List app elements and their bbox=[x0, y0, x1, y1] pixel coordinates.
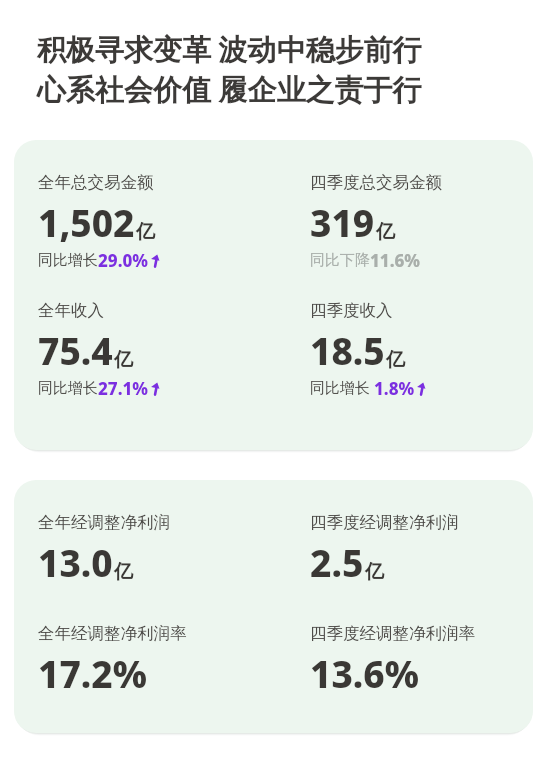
button[interactable]: 四季度经调整净利润 bbox=[310, 512, 521, 587]
button[interactable]: 四季度收入 bbox=[310, 300, 521, 400]
button[interactable]: 全年经调整净利润率 bbox=[38, 623, 278, 698]
staticText: 同比增长 bbox=[38, 251, 98, 270]
button[interactable]: 四季度经调整净利润率 bbox=[310, 623, 521, 698]
staticText: 全年总交易金额 bbox=[38, 172, 154, 193]
staticText: 13.6% bbox=[310, 648, 419, 698]
staticText: 18.5 bbox=[310, 325, 385, 375]
button[interactable]: 全年收入 bbox=[38, 300, 278, 400]
staticText: 319 bbox=[310, 197, 375, 247]
staticText: 27.1% bbox=[98, 377, 149, 400]
staticText: 亿 bbox=[114, 348, 133, 372]
button[interactable]: 全年经调整净利润 bbox=[38, 512, 278, 587]
staticText: 亿 bbox=[376, 220, 395, 244]
staticText: 亿 bbox=[114, 560, 133, 584]
staticText: 29.0% bbox=[98, 249, 149, 272]
staticText: 75.4 bbox=[38, 325, 113, 375]
staticText: 四季度经调整净利润率 bbox=[310, 623, 475, 644]
staticText: 17.2% bbox=[38, 648, 147, 698]
staticText: 四季度收入 bbox=[310, 300, 393, 321]
staticText: 全年经调整净利润 bbox=[38, 512, 170, 533]
staticText: 全年经调整净利润率 bbox=[38, 623, 187, 644]
staticText: 亿 bbox=[365, 560, 384, 584]
staticText: 四季度经调整净利润 bbox=[310, 512, 459, 533]
staticText: 2.5 bbox=[310, 537, 364, 587]
button[interactable]: 四季度总交易金额 bbox=[310, 172, 521, 272]
staticText: 1.8% bbox=[374, 377, 415, 400]
staticText: 心系社会价值 履企业之责于行 bbox=[37, 69, 422, 109]
staticText: 13.0 bbox=[38, 537, 113, 587]
staticText: 同比增长 bbox=[310, 379, 370, 398]
staticText: 同比增长 bbox=[38, 379, 98, 398]
button[interactable]: 全年总交易金额 bbox=[38, 172, 278, 272]
staticText: 积极寻求变革 波动中稳步前行 bbox=[37, 29, 422, 69]
staticText: 1,502 bbox=[38, 197, 135, 247]
staticText: 四季度总交易金额 bbox=[310, 172, 442, 193]
staticText: 亿 bbox=[386, 348, 405, 372]
staticText: 亿 bbox=[136, 220, 155, 244]
staticText: 11.6% bbox=[370, 249, 421, 272]
staticText: 全年收入 bbox=[38, 300, 104, 321]
staticText: 同比下降 bbox=[310, 251, 370, 270]
